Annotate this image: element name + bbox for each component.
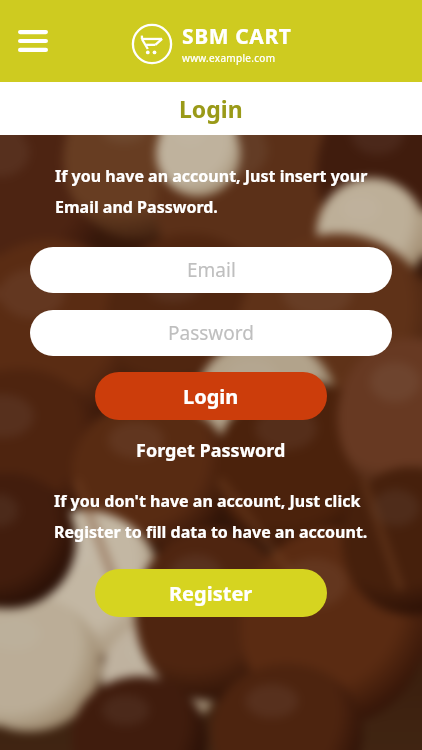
staticText: If you don't have an account, Just click… bbox=[54, 490, 368, 542]
button[interactable]: Register bbox=[95, 569, 327, 617]
staticText: Register bbox=[169, 580, 253, 607]
button[interactable]: Login bbox=[95, 372, 327, 420]
staticText: Forget Password bbox=[136, 438, 286, 463]
staticText: Login bbox=[179, 93, 243, 124]
staticText: Password bbox=[168, 320, 254, 346]
staticText: SBM CART bbox=[182, 22, 292, 51]
button[interactable]: Password bbox=[30, 310, 392, 356]
button[interactable]: Open navigation menu bbox=[12, 24, 54, 58]
button[interactable]: Forget Password bbox=[130, 436, 292, 465]
staticText: Email bbox=[187, 257, 236, 283]
button[interactable]: Email bbox=[30, 247, 392, 293]
staticText: www.example.com bbox=[182, 51, 276, 65]
staticText: If you have an account, Just insert your… bbox=[55, 165, 368, 217]
staticText: Login bbox=[183, 383, 239, 410]
